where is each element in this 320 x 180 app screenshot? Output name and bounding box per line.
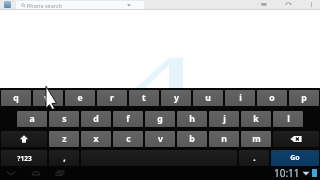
button[interactable]: j [209,111,239,127]
button[interactable]: b [177,131,207,147]
button[interactable]: u [193,90,223,106]
staticText: s [62,113,67,125]
staticText: Phone search [27,2,63,9]
staticText: i [239,92,242,104]
button[interactable]: o [257,90,287,106]
button[interactable]: y [161,90,191,106]
button[interactable]: c [113,131,143,147]
button[interactable]: l [273,111,303,127]
staticText: x [93,133,99,145]
staticText: u [205,92,211,104]
staticText: Go [290,153,300,163]
staticText: z [62,133,67,145]
staticText: m [252,133,261,145]
staticText: ?123 [17,154,32,163]
staticText: y [174,92,179,104]
staticText: g [157,113,163,125]
button[interactable]: e [65,90,95,106]
button[interactable]: i [225,90,255,106]
button[interactable]: a [17,111,47,127]
staticText: w [44,92,52,104]
staticText: h [189,113,195,125]
staticText: c [126,133,131,145]
button[interactable]: z [49,131,79,147]
button[interactable]: t [129,90,159,106]
button[interactable]: m [241,131,271,147]
button[interactable]: f [113,111,143,127]
button[interactable]: More options [307,0,316,9]
button[interactable]: ?123 [1,150,47,166]
staticText: , [63,152,66,164]
button[interactable]: Shift [1,131,47,147]
button[interactable]: Tab [4,1,11,8]
button[interactable]: d [81,111,111,127]
button[interactable]: n [209,131,239,147]
button[interactable]: . [239,150,269,166]
staticText: p [301,92,307,104]
button[interactable]: r [97,90,127,106]
staticText: q [13,92,19,104]
staticText: 10:11 [274,166,300,180]
staticText: v [158,133,163,145]
button[interactable]: Phone search [16,1,144,9]
staticText: . [253,152,256,164]
staticText: d [93,113,99,125]
button[interactable]: q [1,90,31,106]
staticText: e [77,92,83,104]
button[interactable]: w [33,90,63,106]
button[interactable]: p [289,90,319,106]
button[interactable]: Back [3,166,19,180]
button[interactable]: New tab [260,0,269,9]
staticText: b [189,133,195,145]
staticText: l [287,113,290,125]
button[interactable]: s [49,111,79,127]
button[interactable]: Go [271,150,319,166]
button[interactable]: h [177,111,207,127]
staticText: a [29,113,35,125]
button[interactable]: Recent apps [52,166,68,180]
button[interactable]: , [49,150,79,166]
button[interactable]: k [241,111,271,127]
button[interactable]: Home [28,166,44,180]
button[interactable]: Refresh [284,0,293,9]
staticText: j [223,113,226,125]
staticText: f [126,113,130,125]
button[interactable]: x [81,131,111,147]
staticText: r [110,92,114,104]
button[interactable]: g [145,111,175,127]
button[interactable]: Backspace [273,131,319,147]
staticText: o [269,92,275,104]
button[interactable]: v [145,131,175,147]
staticText: k [253,113,259,125]
staticText: n [221,133,227,145]
staticText: t [142,92,146,104]
